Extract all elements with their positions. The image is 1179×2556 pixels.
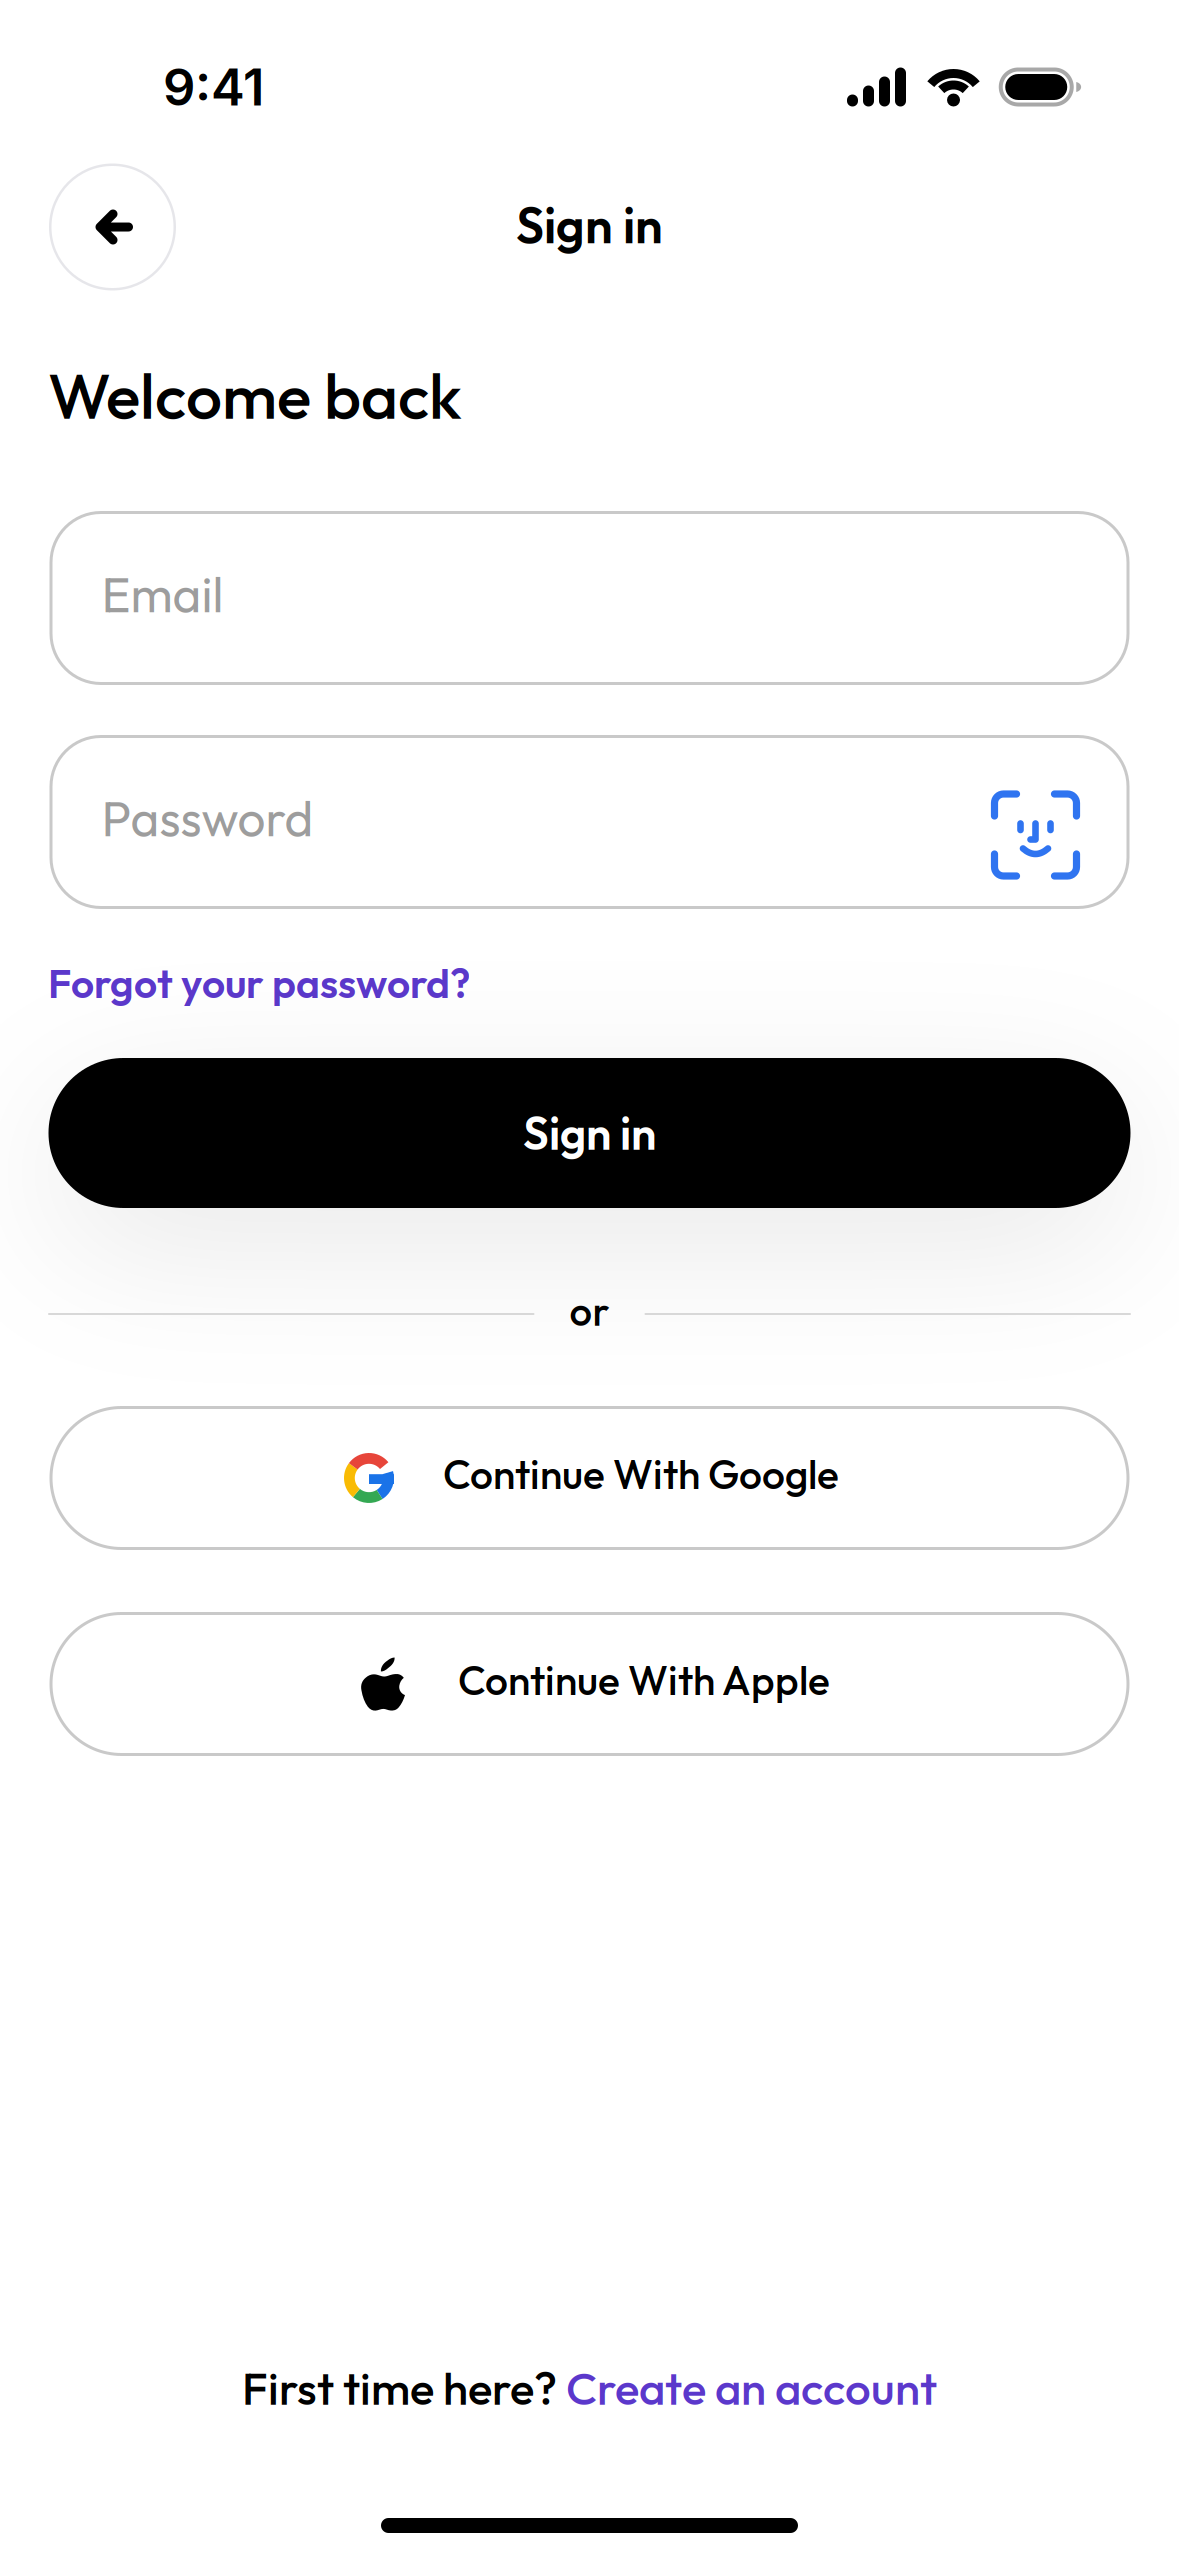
staticText: Continue With Google: [443, 1448, 839, 1500]
staticText: 9:41: [163, 56, 264, 118]
staticText: First time here?: [242, 2359, 566, 2417]
staticText: Create an account: [566, 2359, 937, 2417]
staticText: Continue With Apple: [458, 1654, 830, 1706]
staticText: Welcome back: [48, 355, 462, 435]
staticText: Sign in: [516, 194, 663, 256]
button[interactable]: Create an account: [566, 2359, 937, 2417]
button[interactable]: Continue With Google: [49, 1406, 1129, 1550]
staticText: Forgot your password?: [48, 957, 470, 1009]
button[interactable]: Continue With Apple: [49, 1612, 1129, 1756]
staticText: Password: [101, 787, 313, 849]
button[interactable]: Sign in with Face ID: [997, 781, 1079, 863]
staticText: or: [569, 1286, 609, 1336]
staticText: Email: [101, 563, 223, 625]
staticText: Sign in: [523, 1104, 656, 1161]
button[interactable]: Sign in: [48, 1058, 1130, 1208]
button[interactable]: Back: [49, 163, 176, 290]
button[interactable]: Forgot your password?: [48, 957, 470, 1009]
